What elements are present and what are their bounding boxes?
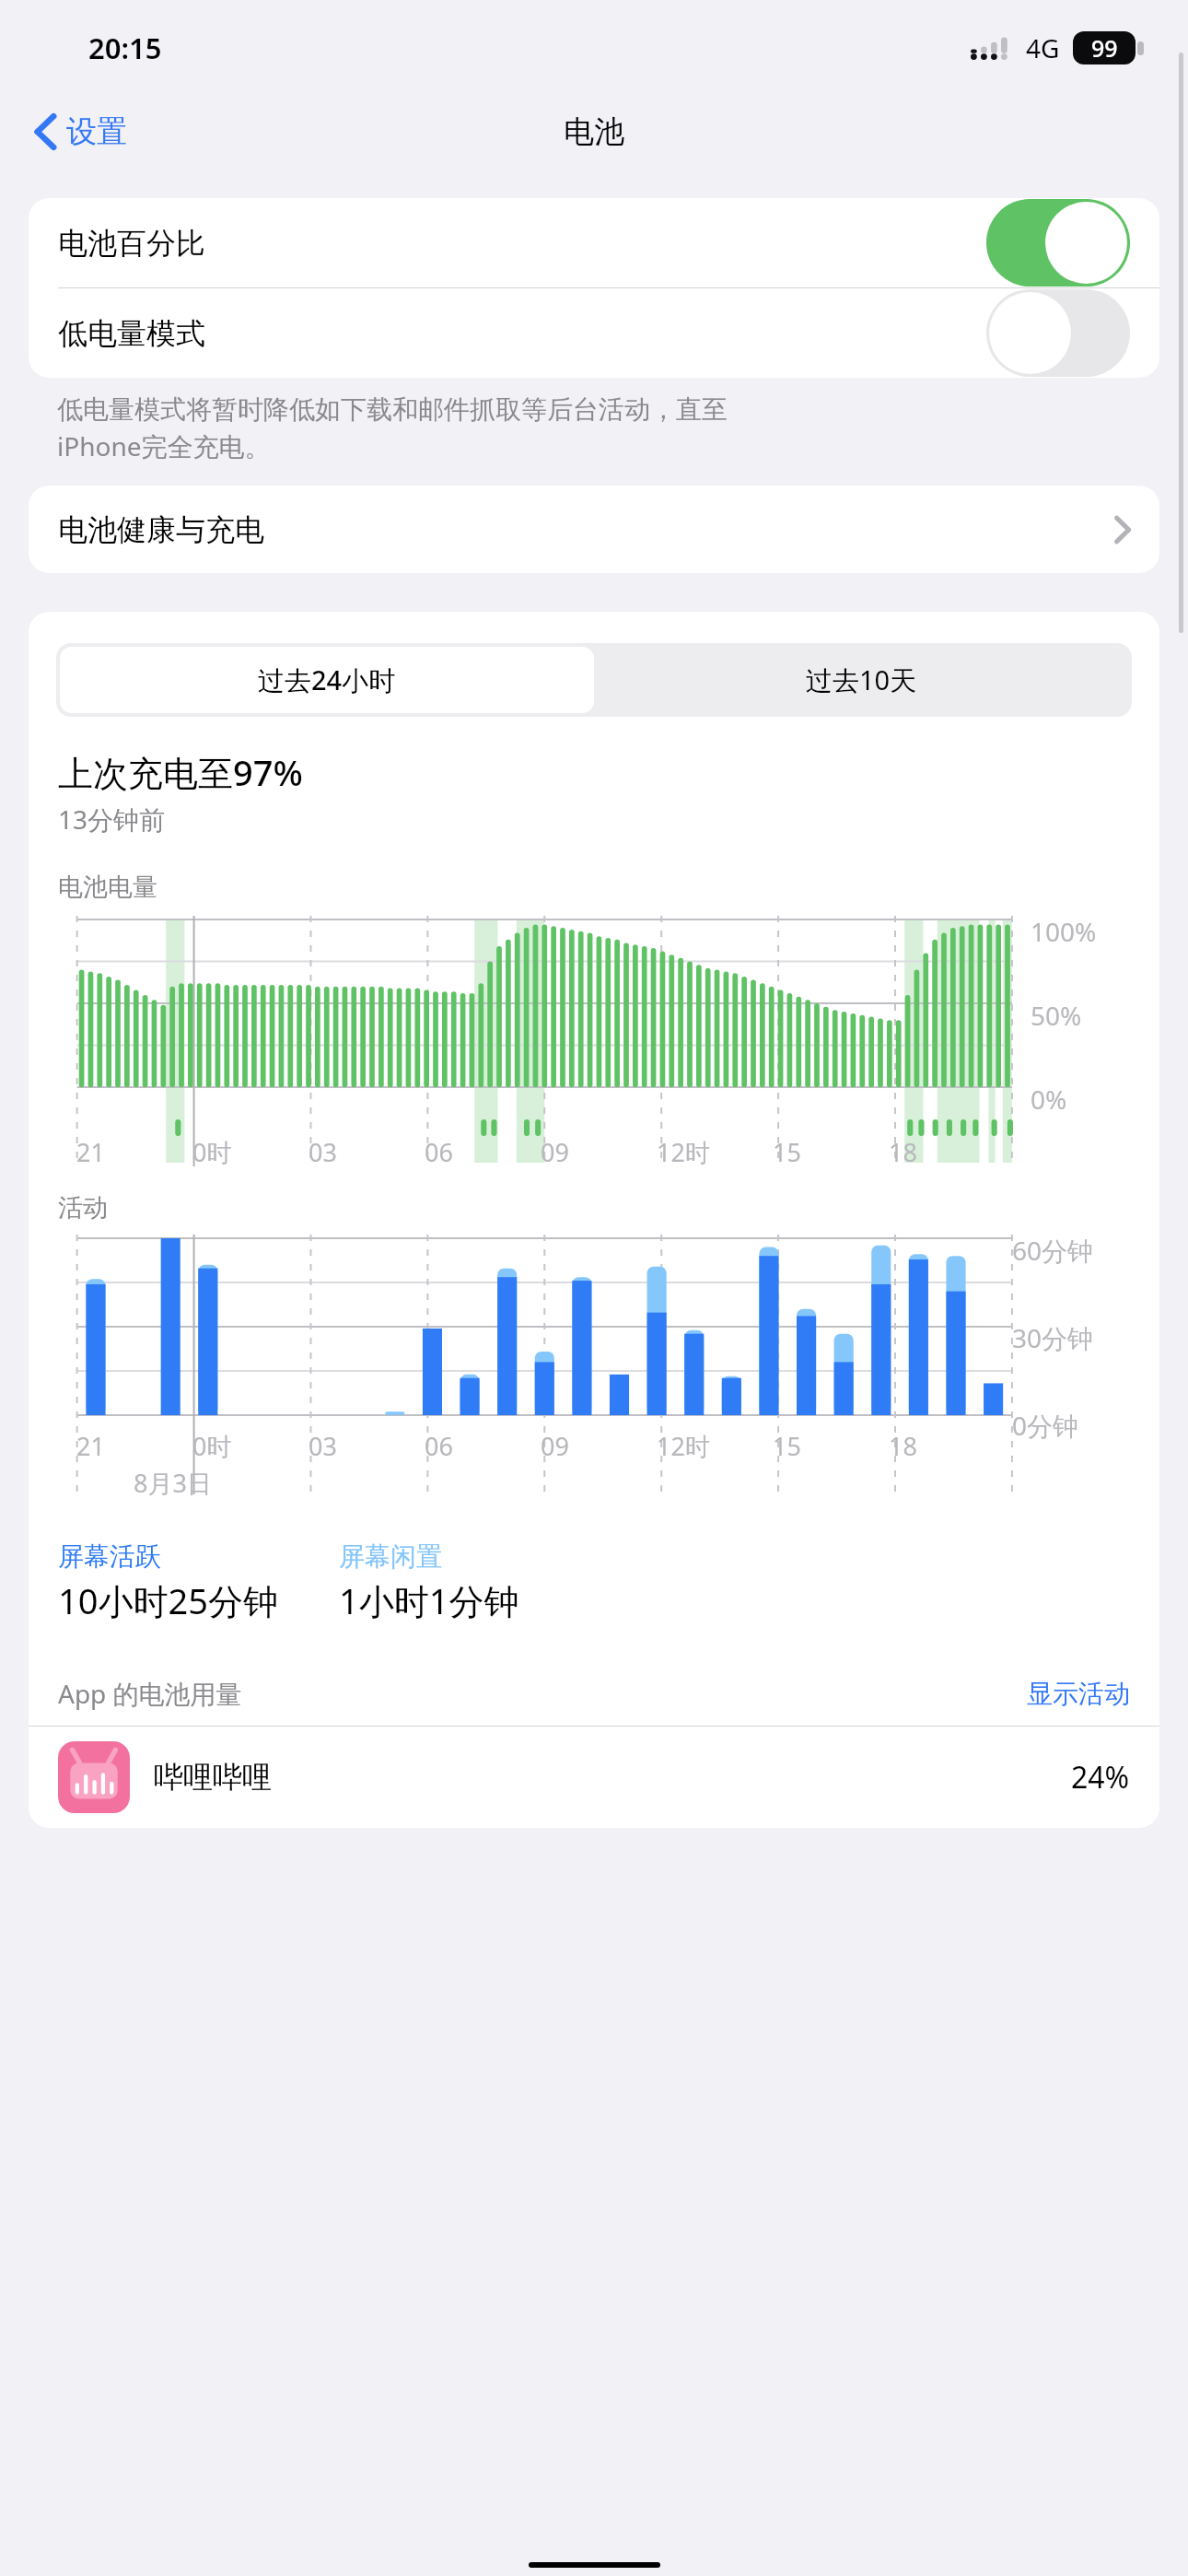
staticText: 18 bbox=[889, 1429, 917, 1463]
staticText: 屏幕闲置 bbox=[339, 1540, 442, 1573]
staticText: 21 bbox=[76, 1429, 105, 1463]
staticText: 过去24小时 bbox=[258, 662, 396, 698]
staticText: 电池百分比 bbox=[58, 225, 205, 262]
staticText: 0% bbox=[1031, 1082, 1067, 1117]
staticText: 0时 bbox=[192, 1135, 232, 1169]
staticText: 12时 bbox=[657, 1135, 710, 1169]
staticText: 电池健康与充电 bbox=[58, 511, 264, 548]
staticText: 活动 bbox=[58, 1192, 108, 1224]
staticText: 13分钟前 bbox=[58, 802, 166, 837]
staticText: 4G bbox=[1026, 30, 1060, 65]
staticText: 电池 bbox=[564, 112, 624, 151]
staticText: 99 bbox=[1091, 32, 1118, 64]
staticText: 18 bbox=[889, 1135, 917, 1169]
button[interactable]: 显示活动 bbox=[1027, 1678, 1130, 1710]
staticText: 21 bbox=[76, 1135, 105, 1169]
staticText: 哔哩哔哩 bbox=[154, 1759, 272, 1796]
staticText: 0分钟 bbox=[1012, 1408, 1079, 1443]
staticText: 低电量模式将暂时降低如下载和邮件抓取等后台活动，直至 iPhone完全充电。 bbox=[57, 393, 1131, 464]
staticText: 100% bbox=[1031, 914, 1097, 949]
staticText: 30分钟 bbox=[1012, 1320, 1094, 1355]
staticText: 设置 bbox=[66, 112, 127, 151]
staticText: 20:15 bbox=[88, 29, 162, 67]
staticText: 15 bbox=[773, 1429, 801, 1463]
staticText: 09 bbox=[541, 1429, 569, 1463]
staticText: 06 bbox=[425, 1429, 453, 1463]
button[interactable]: 过去24小时 bbox=[60, 647, 594, 713]
staticText: App 的电池用量 bbox=[58, 1676, 242, 1711]
button[interactable]: 电池健康与充电 bbox=[29, 486, 1159, 573]
staticText: 09 bbox=[541, 1135, 569, 1169]
staticText: 50% bbox=[1031, 998, 1082, 1033]
staticText: 上次充电至97% bbox=[58, 748, 303, 796]
staticText: 15 bbox=[773, 1135, 801, 1169]
staticText: 03 bbox=[309, 1429, 337, 1463]
button[interactable]: 电池百分比 bbox=[29, 198, 1159, 287]
staticText: 03 bbox=[309, 1135, 337, 1169]
button[interactable]: 低电量模式 bbox=[29, 288, 1159, 378]
staticText: 06 bbox=[425, 1135, 453, 1169]
button[interactable]: Off bbox=[986, 289, 1130, 377]
button[interactable]: 过去10天 bbox=[594, 647, 1128, 713]
button[interactable]: 设置 bbox=[28, 105, 134, 158]
staticText: 屏幕活跃 bbox=[58, 1540, 161, 1573]
button[interactable]: On bbox=[986, 199, 1130, 287]
staticText: 12时 bbox=[657, 1429, 710, 1463]
staticText: 1小时1分钟 bbox=[339, 1576, 519, 1624]
staticText: 0时 bbox=[192, 1429, 232, 1463]
staticText: 60分钟 bbox=[1012, 1233, 1094, 1268]
staticText: 8月3日 bbox=[134, 1466, 212, 1500]
staticText: 电池电量 bbox=[58, 872, 157, 903]
staticText: 显示活动 bbox=[1027, 1678, 1130, 1710]
staticText: 24% bbox=[1071, 1757, 1130, 1797]
button[interactable]: 哔哩哔哩 bbox=[29, 1727, 1159, 1828]
staticText: 低电量模式 bbox=[58, 315, 205, 352]
staticText: 过去10天 bbox=[806, 662, 917, 698]
staticText: 10小时25分钟 bbox=[58, 1576, 278, 1624]
